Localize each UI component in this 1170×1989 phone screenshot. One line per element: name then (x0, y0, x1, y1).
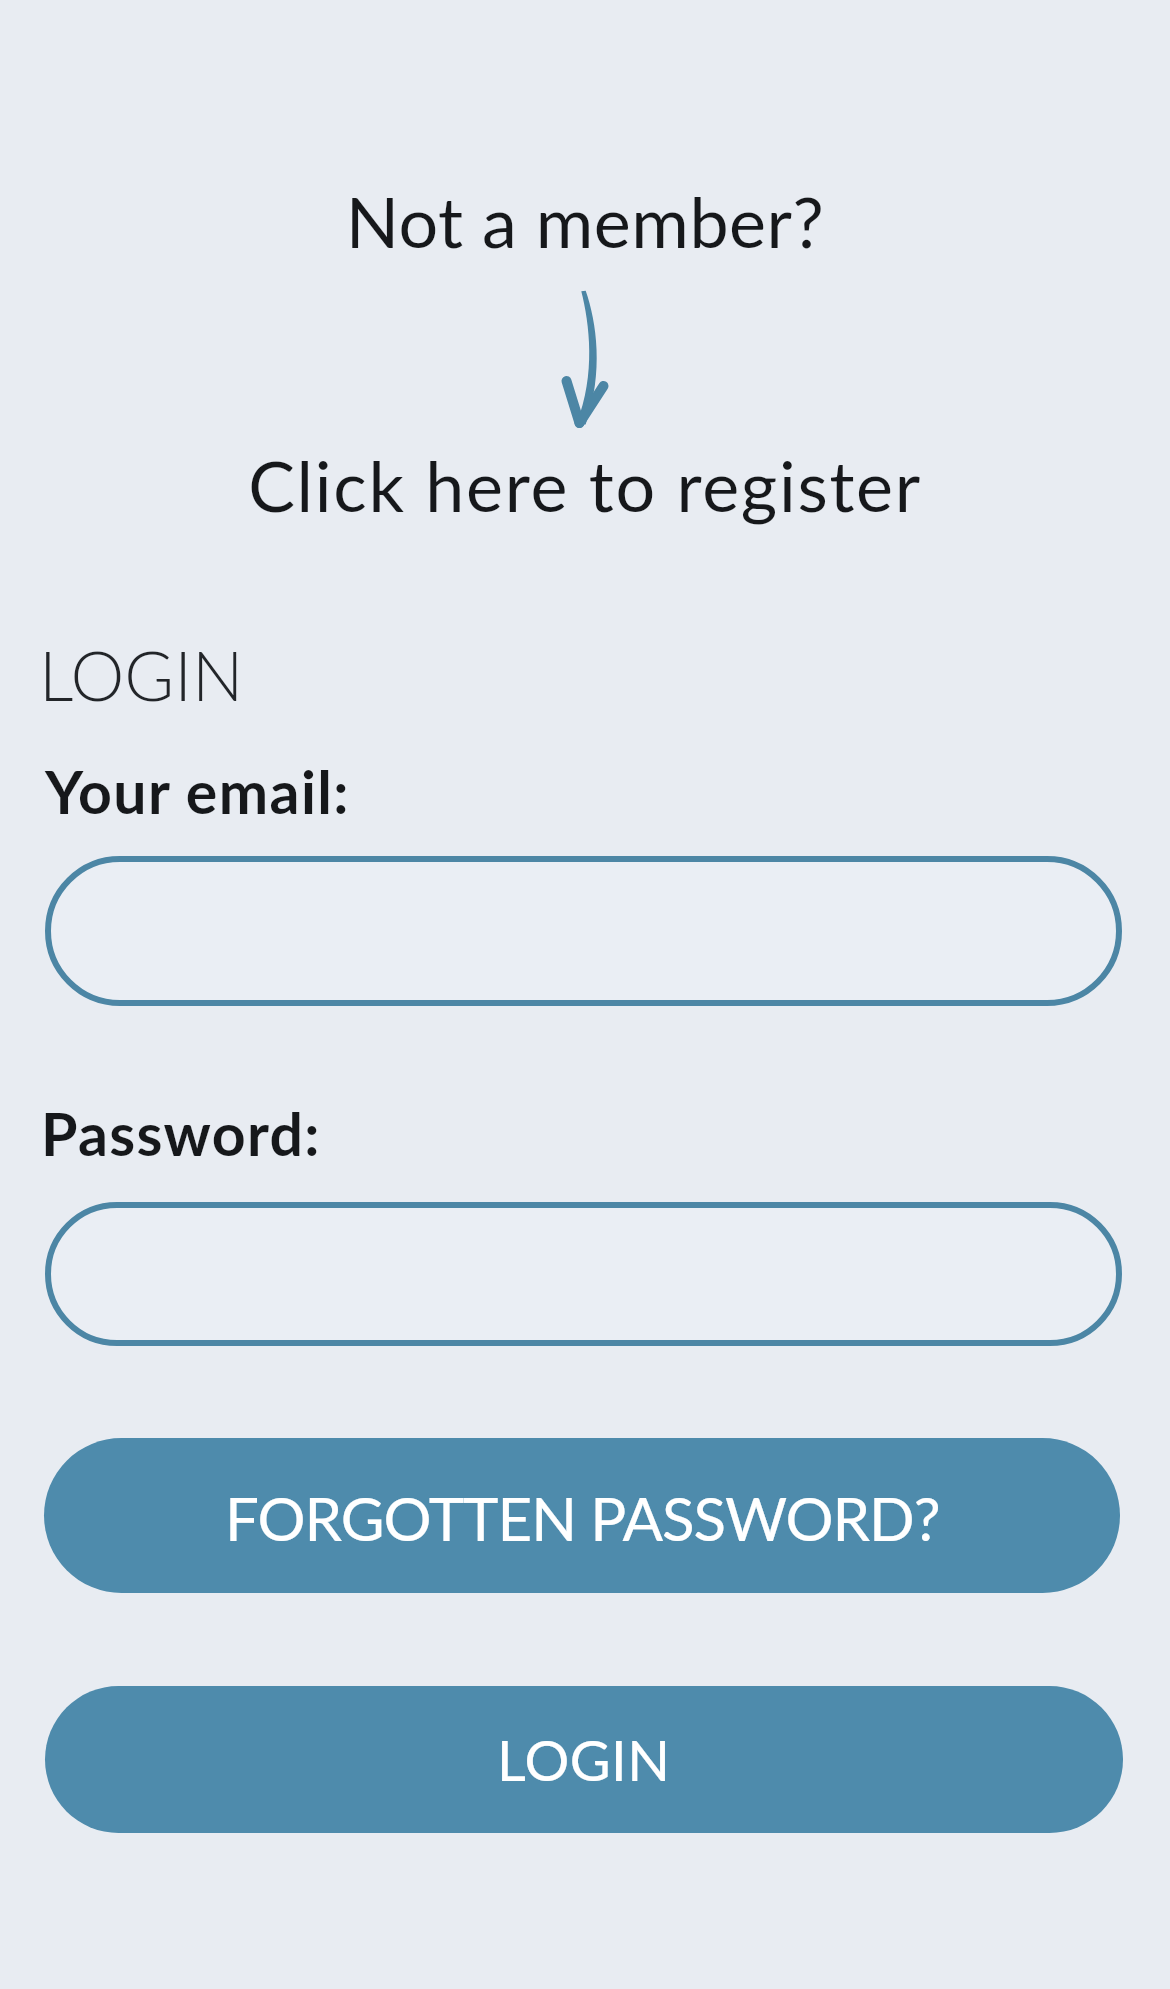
button[interactable] (45, 856, 1122, 1006)
staticText: FORGOTTEN PASSWORD? (225, 1482, 940, 1554)
staticText: Password: (41, 1098, 321, 1169)
button[interactable]: FORGOTTEN PASSWORD? (44, 1438, 1120, 1593)
button[interactable]: LOGIN (45, 1686, 1123, 1833)
button[interactable]: Click here to register (0, 443, 1170, 527)
staticText: LOGIN (39, 634, 244, 716)
staticText: Your email: (45, 756, 350, 827)
staticText: Not a member? (0, 179, 1170, 263)
staticText: LOGIN (497, 1726, 671, 1793)
button[interactable] (45, 1202, 1122, 1346)
